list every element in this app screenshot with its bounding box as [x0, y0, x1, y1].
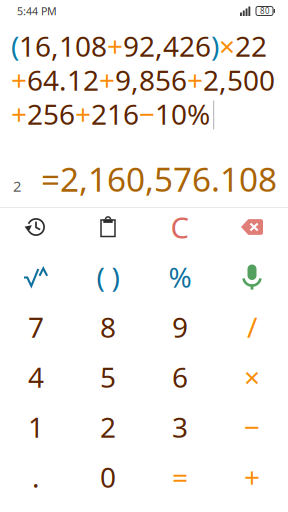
button[interactable]: /	[216, 302, 288, 352]
staticText: ×	[219, 27, 235, 65]
staticText: +	[11, 61, 27, 99]
button[interactable]: Paste from clipboard	[72, 202, 144, 252]
button[interactable]: =	[144, 452, 216, 502]
button[interactable]: 9	[144, 302, 216, 352]
button[interactable]: +	[216, 452, 288, 502]
staticText: +	[107, 27, 123, 65]
button[interactable]: 3	[144, 402, 216, 452]
staticText: −	[244, 408, 260, 446]
staticText: ( )	[96, 258, 119, 296]
staticText: 3	[172, 408, 188, 446]
staticText: 2,500	[203, 61, 275, 99]
button[interactable]: 0	[72, 452, 144, 502]
staticText: 5	[100, 358, 116, 396]
staticText: %	[168, 258, 191, 296]
staticText: 256	[27, 95, 75, 133]
staticText: 216	[91, 95, 139, 133]
button[interactable]: 5	[72, 352, 144, 402]
button[interactable]: 4	[0, 352, 72, 402]
staticText: =	[172, 458, 188, 496]
button[interactable]: C	[144, 202, 216, 252]
button[interactable]: Voice input	[216, 252, 288, 302]
staticText: 4	[28, 358, 44, 396]
button[interactable]: History	[0, 202, 72, 252]
staticText: 2	[13, 176, 21, 196]
staticText: 16,108	[19, 27, 107, 65]
staticText: 0	[100, 458, 116, 496]
staticText: 1	[28, 408, 44, 446]
button[interactable]: 8	[72, 302, 144, 352]
staticText: 9,856	[115, 61, 187, 99]
staticText: )	[211, 27, 219, 65]
staticText: %	[187, 95, 210, 133]
staticText: +	[99, 61, 115, 99]
staticText: +	[244, 458, 260, 496]
staticText: 6	[172, 358, 188, 396]
staticText: 7	[28, 308, 44, 346]
staticText: +	[75, 95, 91, 133]
button[interactable]: .	[0, 452, 72, 502]
button[interactable]: 7	[0, 302, 72, 352]
staticText: +	[11, 95, 27, 133]
staticText: (	[11, 27, 19, 65]
staticText: 80	[260, 6, 270, 16]
staticText: +	[187, 61, 203, 99]
staticText: =2,160,576.108	[41, 157, 277, 201]
staticText: .	[32, 458, 40, 496]
button[interactable]: −	[216, 402, 288, 452]
staticText: 92,426	[123, 27, 211, 65]
staticText: /	[247, 308, 257, 346]
button[interactable]: Square root and power	[0, 252, 72, 302]
staticText: 5:44 PM	[17, 4, 57, 18]
button[interactable]: %	[144, 252, 216, 302]
button[interactable]: Backspace	[216, 202, 288, 252]
staticText: 64.12	[27, 61, 99, 99]
staticText: 8	[100, 308, 116, 346]
staticText: 22	[235, 27, 267, 65]
staticText: −	[139, 95, 155, 133]
button[interactable]: 6	[144, 352, 216, 402]
button[interactable]: 2	[72, 402, 144, 452]
staticText: ×	[244, 358, 260, 396]
button[interactable]: ×	[216, 352, 288, 402]
staticText: 10	[155, 95, 187, 133]
staticText: C	[170, 207, 189, 246]
button[interactable]: ( )	[72, 252, 144, 302]
staticText: 2	[100, 408, 116, 446]
button[interactable]: 1	[0, 402, 72, 452]
staticText	[210, 95, 217, 133]
staticText: 9	[172, 308, 188, 346]
